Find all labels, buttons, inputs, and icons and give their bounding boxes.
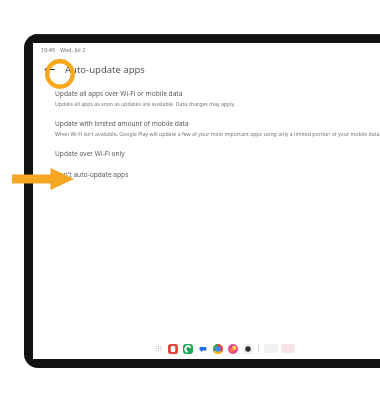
button[interactable]: Phone xyxy=(182,343,193,354)
button[interactable]: Camera xyxy=(242,343,253,354)
button[interactable]: Photos xyxy=(227,343,238,354)
staticText: Update over Wi-Fi only xyxy=(55,149,125,158)
staticText: Update all apps as soon as updates are a… xyxy=(55,100,236,107)
button[interactable]: Update with limited amount of mobile dat… xyxy=(33,118,380,138)
staticText: Update with limited amount of mobile dat… xyxy=(55,119,189,128)
staticText: 10:45 xyxy=(41,46,56,53)
staticText: Don't auto-update apps xyxy=(55,170,129,179)
button[interactable]: Update all apps over Wi-Fi or mobile dat… xyxy=(33,88,380,108)
staticText: Auto-update apps xyxy=(65,63,145,76)
button[interactable]: Messages xyxy=(197,343,208,354)
button[interactable]: Chrome xyxy=(212,343,223,354)
button[interactable]: Play Store xyxy=(167,343,178,354)
button[interactable]: Don't auto-update apps xyxy=(33,169,380,180)
staticText: Wed, Jul 2 xyxy=(60,46,86,53)
button[interactable]: Update over Wi-Fi only xyxy=(33,148,380,159)
staticText: When Wi-Fi isn't available, Google Play … xyxy=(55,130,380,137)
staticText: Update all apps over Wi-Fi or mobile dat… xyxy=(55,89,183,98)
button[interactable]: All apps xyxy=(152,342,164,354)
button[interactable]: Back xyxy=(37,57,61,81)
